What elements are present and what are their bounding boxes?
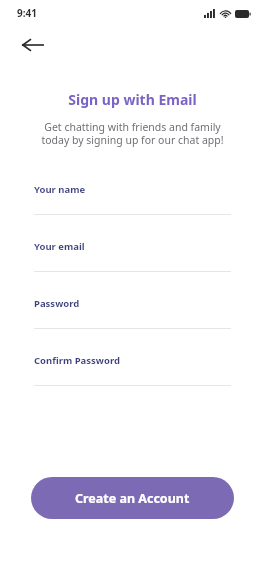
button[interactable]: Back (16, 28, 50, 62)
button[interactable]: Password (34, 297, 231, 354)
staticText: Sign up with Email (68, 90, 197, 109)
button[interactable]: Your name (34, 183, 231, 240)
button[interactable]: Confirm Password (34, 354, 231, 411)
staticText: 9:41 (17, 6, 37, 20)
staticText: Create an Account (75, 490, 190, 507)
staticText: Confirm Password (34, 354, 120, 367)
staticText: Your name (34, 183, 86, 196)
button[interactable]: Create an Account (31, 477, 234, 519)
staticText: Your email (34, 240, 85, 253)
staticText: Password (34, 297, 80, 310)
staticText: Get chatting with friends and family tod… (41, 120, 224, 147)
button[interactable]: Your email (34, 240, 231, 297)
